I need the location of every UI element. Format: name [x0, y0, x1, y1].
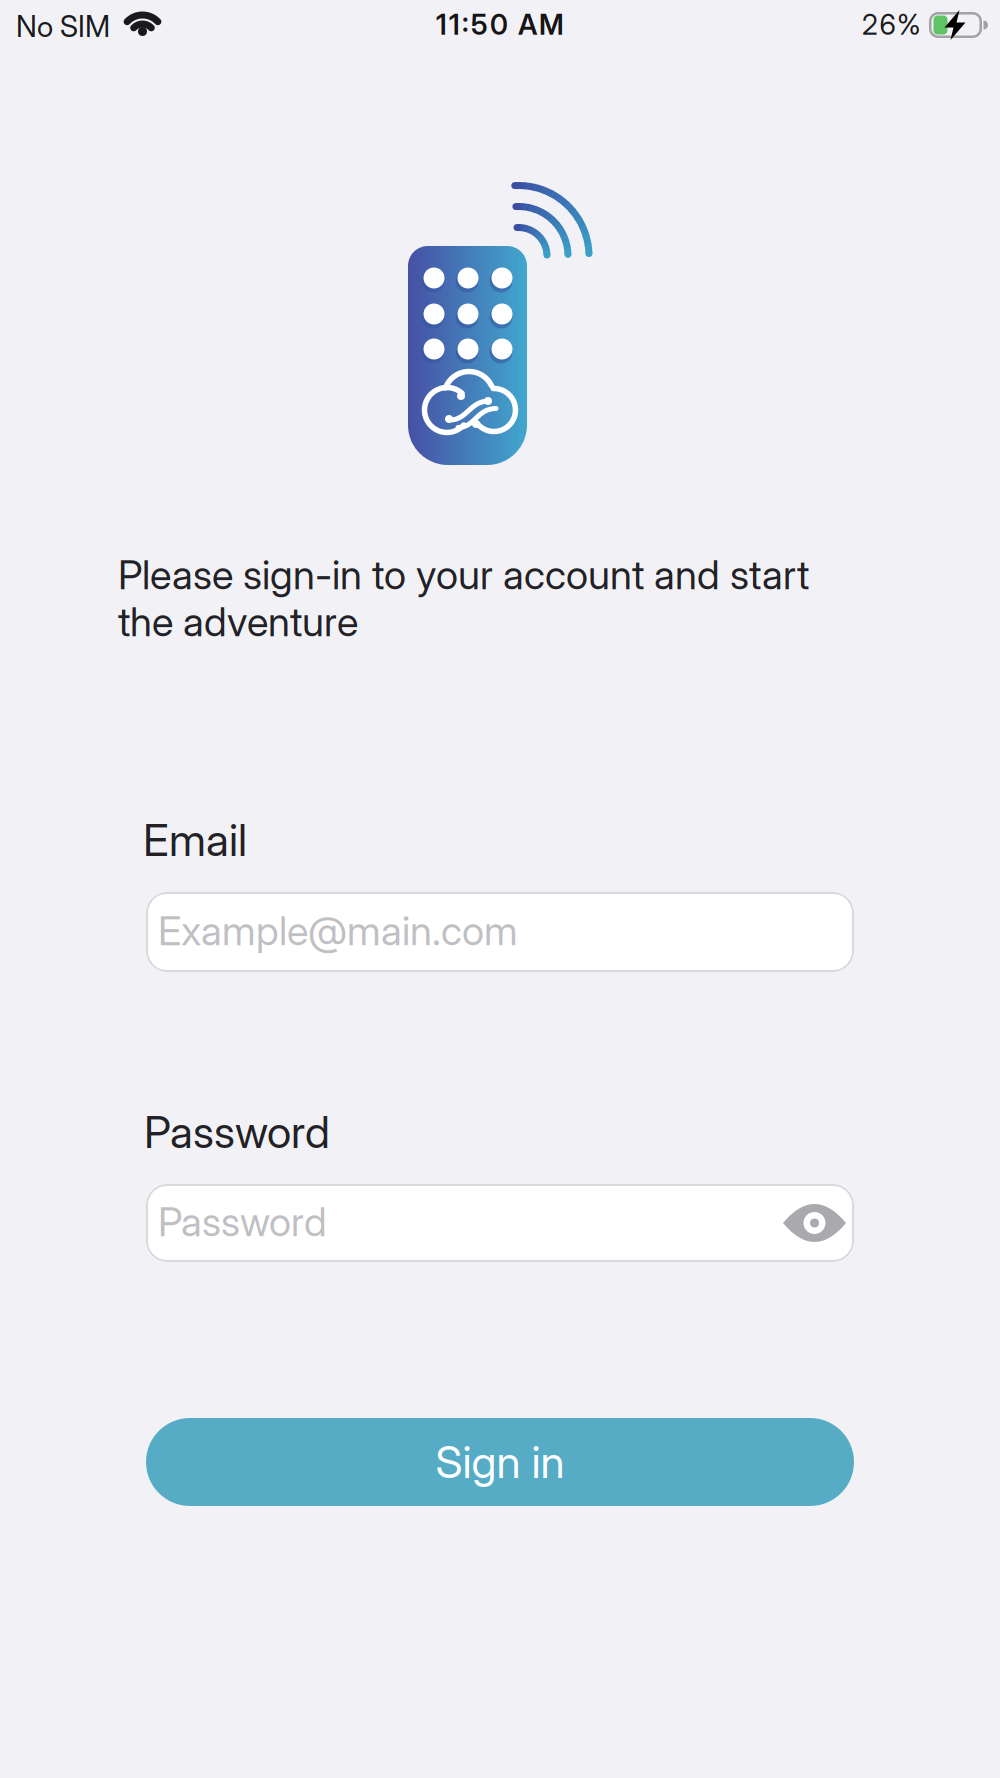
staticText: No SIM [16, 9, 110, 44]
button[interactable]: Example@main.com [146, 892, 854, 972]
button[interactable] [782, 1194, 846, 1252]
staticText: Sign in [435, 1436, 564, 1488]
staticText: Password [158, 1198, 327, 1245]
staticText: 26% [862, 8, 921, 41]
staticText: Example@main.com [158, 907, 518, 954]
staticText: Please sign-in to your account and start… [118, 551, 809, 645]
button[interactable]: Password [146, 1184, 854, 1262]
staticText: Password [144, 1106, 330, 1158]
button[interactable]: Sign in [146, 1418, 854, 1506]
staticText: 11:50 AM [436, 8, 564, 41]
staticText: Email [143, 814, 247, 866]
